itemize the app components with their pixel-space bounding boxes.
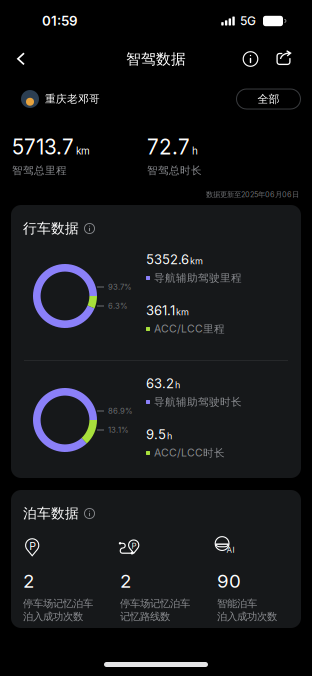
staticText: ACC/LCC里程: [154, 322, 225, 336]
staticText: 2: [23, 570, 34, 592]
button[interactable]: Info: [234, 42, 267, 76]
staticText: 01:59: [42, 13, 78, 29]
staticText: 导航辅助驾驶时长: [154, 395, 242, 409]
staticText: 93.7%: [108, 282, 132, 292]
staticText: 361.1: [146, 303, 175, 318]
staticText: 5G: [240, 14, 256, 28]
staticText: 记忆路线数: [120, 610, 170, 623]
staticText: 2: [120, 570, 131, 592]
staticText: 90: [217, 570, 241, 592]
staticText: ACC/LCC时长: [154, 446, 225, 460]
staticText: 智能泊车: [217, 597, 257, 610]
staticText: 泊车数据: [23, 505, 79, 522]
button[interactable]: Share: [267, 42, 300, 76]
staticText: 86.9%: [108, 406, 133, 416]
staticText: 停车场记忆泊车: [23, 597, 93, 610]
button[interactable]: 全部: [236, 89, 300, 109]
staticText: 全部: [257, 92, 279, 106]
staticText: 5352.6: [146, 252, 189, 267]
staticText: 9.5: [146, 427, 166, 442]
staticText: 重庆老邓哥: [45, 92, 100, 106]
staticText: 5713.7: [12, 134, 74, 159]
staticText: P: [29, 540, 36, 553]
staticText: P: [132, 541, 137, 551]
staticText: 智驾数据: [126, 50, 186, 68]
staticText: h: [167, 430, 172, 441]
staticText: AI: [226, 545, 234, 555]
staticText: 智驾总里程: [12, 164, 67, 177]
staticText: 72.7: [147, 134, 190, 159]
staticText: 泊入成功次数: [217, 610, 277, 623]
staticText: km: [76, 145, 90, 157]
staticText: h: [192, 145, 198, 157]
staticText: 13.1%: [108, 425, 129, 435]
staticText: 行车数据: [23, 220, 79, 237]
staticText: km: [176, 306, 189, 317]
button[interactable]: Back: [0, 42, 42, 76]
staticText: km: [190, 255, 203, 266]
staticText: 智驾总时长: [147, 164, 202, 177]
staticText: 数据更新至2025年06月06日: [206, 190, 299, 199]
staticText: 63.2: [146, 376, 174, 391]
staticText: 6.3%: [108, 301, 128, 311]
staticText: h: [175, 379, 180, 390]
staticText: 导航辅助驾驶里程: [154, 271, 242, 285]
staticText: 泊入成功次数: [23, 610, 83, 623]
staticText: 停车场记忆泊车: [120, 597, 190, 610]
